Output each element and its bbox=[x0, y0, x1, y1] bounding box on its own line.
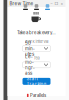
staticText: Start Tracking bbox=[26, 76, 46, 87]
button[interactable]: Start Tracking bbox=[22, 78, 50, 85]
staticText: Lemongrass bbox=[25, 54, 35, 76]
staticText: 50 minutes bbox=[25, 40, 35, 57]
staticText: Parallels bbox=[30, 93, 46, 98]
staticText: – □ × bbox=[50, 1, 63, 6]
button[interactable]: Lemongrass bbox=[22, 62, 50, 68]
staticText: Take a break every… bbox=[17, 30, 56, 35]
button[interactable]: 50 minutes bbox=[22, 45, 50, 51]
staticText: Work interval bbox=[24, 39, 48, 44]
staticText: Tea bbox=[33, 55, 39, 60]
staticText: Brew Time bbox=[9, 1, 33, 6]
